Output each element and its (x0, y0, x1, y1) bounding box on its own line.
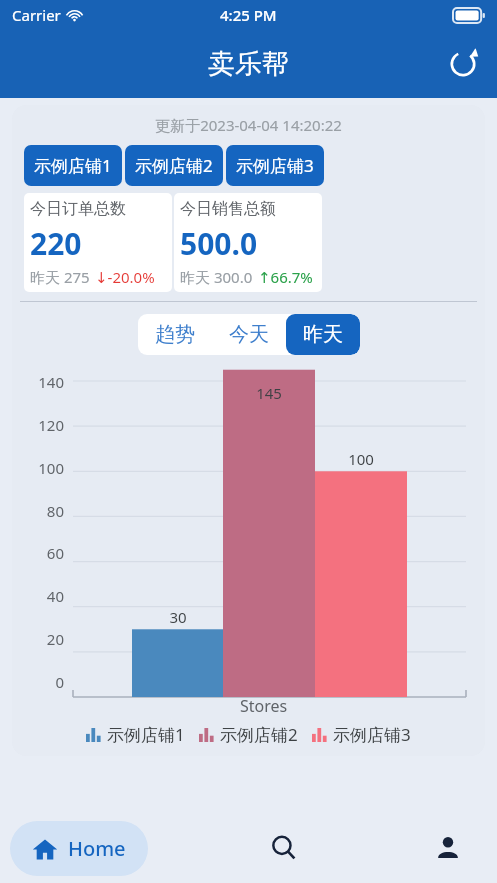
staticText: 0 (18, 672, 64, 692)
staticText: 40 (18, 586, 64, 606)
staticText: ↓-20.0% (95, 267, 155, 287)
button[interactable]: Profile (421, 821, 475, 875)
staticText: 示例店铺1 (34, 154, 112, 177)
button[interactable]: 示例店铺3 (226, 145, 324, 186)
staticText: 更新于2023-04-04 14:20:22 (12, 115, 485, 135)
staticText: 145 (246, 383, 292, 403)
button[interactable]: 示例店铺1 (86, 723, 185, 746)
staticText: ↑66.7% (258, 267, 313, 287)
button[interactable]: Home (10, 821, 148, 876)
staticText: 100 (338, 449, 384, 469)
button[interactable]: 今日订单总数 (24, 193, 172, 292)
staticText: 示例店铺2 (135, 154, 213, 177)
button[interactable]: 今日销售总额 (174, 193, 322, 292)
staticText: 220 (30, 223, 82, 264)
staticText: Home (68, 835, 126, 862)
staticText: 4:25 PM (220, 5, 277, 25)
staticText: 100 (18, 458, 64, 478)
button[interactable]: 示例店铺2 (199, 723, 298, 746)
staticText: 120 (18, 415, 64, 435)
button[interactable]: 示例店铺3 (312, 723, 411, 746)
button[interactable]: 示例店铺2 (125, 145, 223, 186)
staticText: 今日销售总额 (180, 199, 276, 219)
staticText: 昨天 300.0 (180, 267, 253, 287)
staticText: 卖乐帮 (208, 47, 289, 81)
button[interactable]: 趋势 (138, 314, 212, 355)
staticText: 80 (18, 501, 64, 521)
staticText: 趋势 (155, 322, 195, 347)
staticText: Stores (240, 695, 288, 717)
staticText: 昨天 (303, 322, 343, 347)
button[interactable]: 昨天 (286, 314, 360, 355)
staticText: 今天 (229, 322, 269, 347)
staticText: 昨天 275 (30, 267, 90, 287)
button[interactable]: 今天 (212, 314, 286, 355)
staticText: 500.0 (180, 223, 258, 264)
staticText: 140 (18, 372, 64, 392)
staticText: 20 (18, 629, 64, 649)
button[interactable]: Refresh (443, 44, 483, 84)
staticText: 示例店铺3 (333, 723, 411, 746)
staticText: 示例店铺1 (107, 723, 185, 746)
button[interactable]: 示例店铺1 (24, 145, 122, 186)
staticText: 示例店铺3 (236, 154, 314, 177)
staticText: 60 (18, 543, 64, 563)
staticText: 30 (155, 607, 201, 627)
staticText: 示例店铺2 (220, 723, 298, 746)
staticText: 今日订单总数 (30, 199, 126, 219)
staticText: Carrier (12, 5, 61, 25)
button[interactable]: Search (257, 821, 311, 875)
